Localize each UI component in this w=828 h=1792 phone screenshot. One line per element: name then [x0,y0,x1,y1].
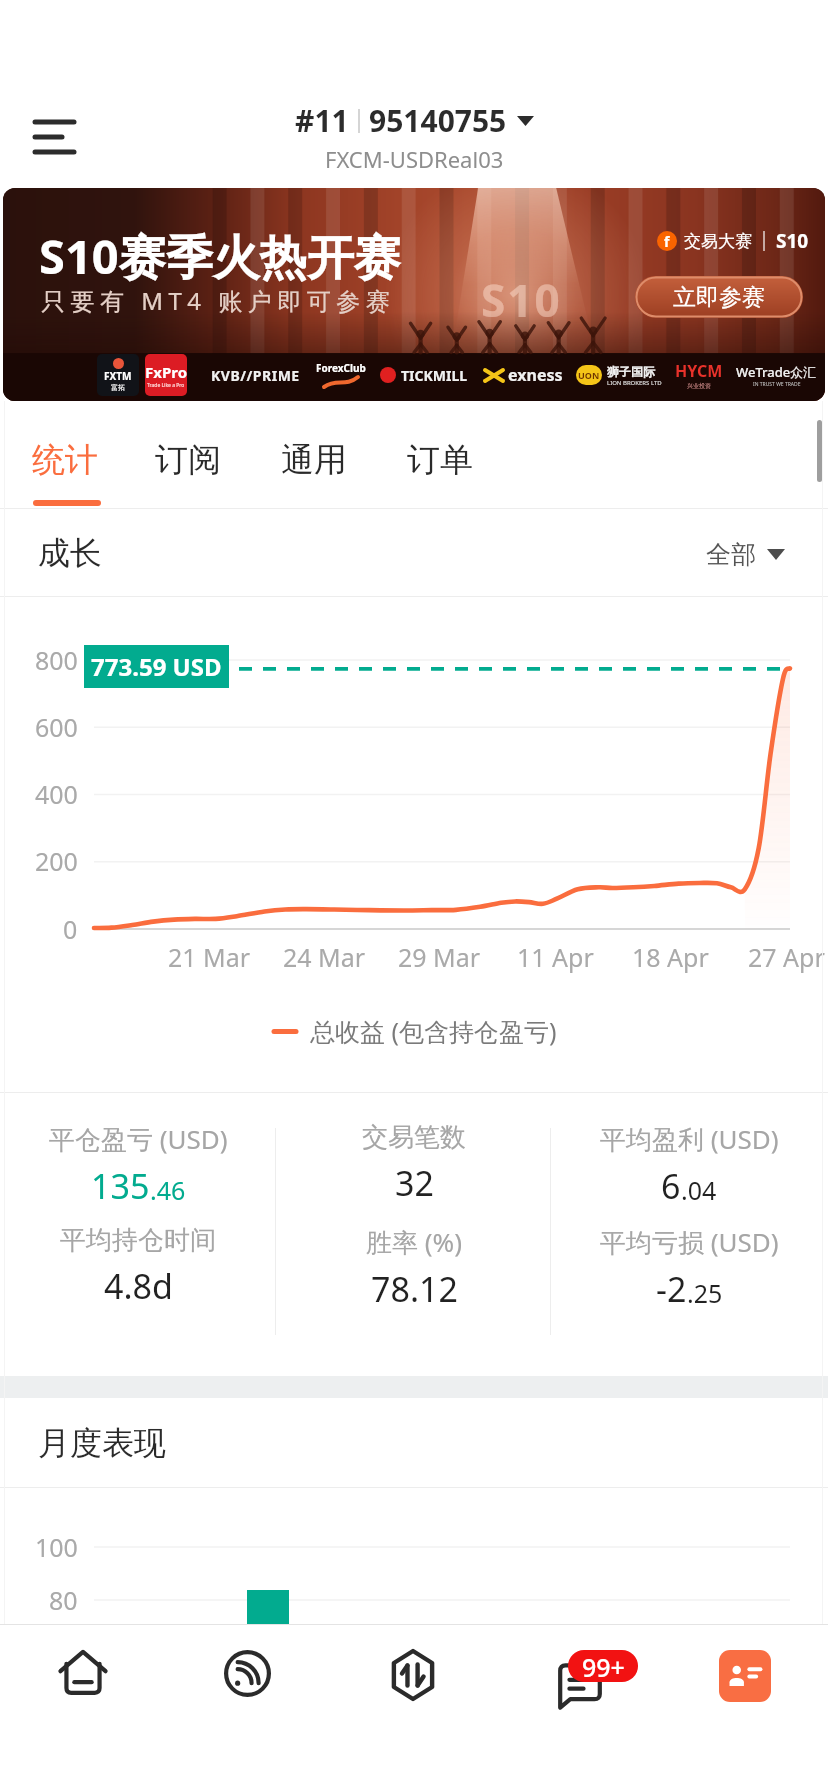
staticText: FxPro [145,362,187,382]
staticText: HYCM [675,360,723,382]
staticText: 总收益 (包含持仓盈亏) [310,1014,557,1048]
button[interactable]: Messages [496,1625,662,1792]
staticText: exness [508,364,563,386]
staticText: 32 [395,1160,434,1206]
staticText: 兴业投资 [687,382,711,390]
button[interactable]: Profile [662,1625,828,1792]
staticText: S10赛季火热开赛 [39,224,401,288]
staticText: 95140755 [369,100,507,141]
staticText: 135 [91,1163,150,1209]
staticText: 200 [35,844,78,878]
button[interactable]: S10 trading contest banner [3,188,825,401]
staticText: S10 [776,228,809,254]
staticText: 100 [35,1530,78,1564]
staticText: -2 [656,1266,687,1312]
button[interactable]: 订单 [407,439,473,481]
staticText: 平均盈利 (USD) [600,1121,779,1157]
staticText: 订单 [407,439,473,481]
button[interactable]: 全部 [706,539,785,570]
staticText: 80 [49,1583,78,1617]
staticText: Trade Like a Pro [147,382,185,389]
staticText: 78.12 [371,1266,458,1312]
button[interactable]: 订阅 [155,439,221,481]
button[interactable]: Trade [330,1625,496,1792]
button[interactable]: Signals [165,1625,330,1792]
staticText: S10 [481,270,562,330]
staticText: 富拓 [111,383,125,392]
button[interactable]: 统计 [32,439,98,481]
staticText: 400 [35,777,78,811]
staticText: 773.59 USD [91,650,222,683]
staticText: FXTM [104,369,132,383]
staticText: 只要有 MT4 账户即可参赛 [41,284,396,317]
staticText: 月度表现 [38,1423,166,1463]
staticText: 600 [35,710,78,744]
staticText: 6 [661,1163,681,1209]
staticText: .04 [681,1173,717,1207]
staticText: 27 Apr [748,940,825,974]
staticText: 99+ [582,1650,625,1682]
staticText: 4.8d [104,1263,173,1309]
staticText: 800 [35,643,78,677]
staticText: #11 [295,100,349,141]
staticText: WeTrade众汇 [736,363,817,381]
staticText: ForexClub [316,361,366,375]
staticText: 胜率 (%) [366,1224,462,1260]
staticText: 全部 [706,539,756,570]
staticText: .46 [150,1173,186,1207]
staticText: 立即参赛 [673,283,765,312]
button[interactable]: 立即参赛 [635,276,803,318]
staticText: 18 Apr [632,940,709,974]
staticText: .25 [687,1276,723,1310]
staticText: 平仓盈亏 (USD) [49,1121,228,1157]
staticText: 平均持仓时间 [60,1224,216,1257]
staticText: TICKMILL [401,366,468,385]
staticText: 平均亏损 (USD) [600,1224,779,1260]
button[interactable]: Menu [14,98,94,178]
staticText: 24 Mar [283,940,366,974]
staticText: KVB//PRIME [211,366,300,385]
button[interactable]: #11 [0,100,828,174]
button[interactable]: 通用 [281,439,347,481]
staticText: IN TRUST WE TRADE [753,381,801,388]
staticText: FXCM-USDReal03 [325,144,504,174]
staticText: f [664,232,670,251]
staticText: 成长 [38,533,102,573]
staticText: 交易笔数 [362,1121,466,1154]
staticText: 0 [63,912,78,946]
staticText: 交易大赛 [684,231,752,252]
staticText: 统计 [32,439,98,481]
staticText: 通用 [281,439,347,481]
staticText: UON [578,369,600,381]
staticText: 21 Mar [168,940,251,974]
staticText: 狮子国际 [607,364,655,379]
staticText: 订阅 [155,439,221,481]
staticText: 29 Mar [398,940,481,974]
staticText: 11 Apr [517,940,594,974]
staticText: LION BROKERS LTD [607,379,662,387]
button[interactable]: Home [0,1625,165,1792]
